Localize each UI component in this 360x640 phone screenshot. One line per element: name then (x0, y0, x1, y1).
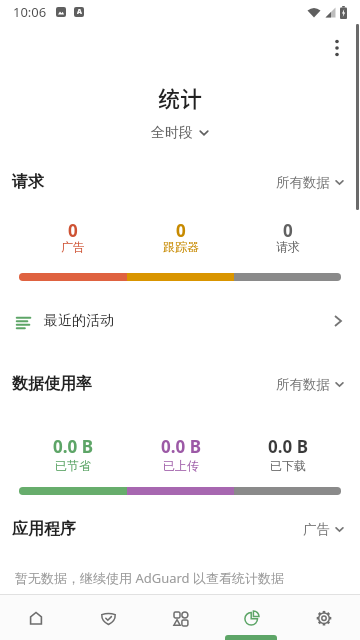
button[interactable]: 所有数据 (276, 376, 344, 393)
button[interactable]: 广告 (303, 521, 344, 538)
button[interactable] (0, 595, 72, 640)
staticText: 0 (283, 219, 293, 239)
staticText: 请求 (12, 172, 44, 192)
staticText: 已上传 (163, 458, 199, 473)
staticText: 最近的活动 (44, 312, 114, 330)
button[interactable] (72, 595, 144, 640)
staticText: 0.0 B (268, 435, 308, 455)
staticText: 统计 (158, 81, 203, 111)
button[interactable] (321, 32, 353, 64)
staticText: 广告 (61, 239, 85, 254)
staticText: 所有数据 (276, 174, 330, 191)
button[interactable] (216, 595, 288, 640)
button[interactable]: 最近的活动 (0, 297, 360, 345)
staticText: 全时段 (151, 124, 193, 142)
staticText: 10:06 (13, 3, 47, 21)
button[interactable] (144, 595, 216, 640)
staticText: 已下载 (270, 458, 306, 473)
staticText: 0 (68, 219, 78, 239)
button[interactable]: 所有数据 (276, 174, 344, 191)
staticText: 0.0 B (53, 435, 93, 455)
staticText: 跟踪器 (163, 239, 199, 254)
staticText: 应用程序 (12, 519, 76, 539)
button[interactable] (288, 595, 360, 640)
button[interactable]: 全时段 (151, 119, 209, 147)
staticText: 所有数据 (276, 376, 330, 393)
staticText: 广告 (303, 521, 330, 538)
staticText: 暂无数据，继续使用 AdGuard 以查看统计数据 (15, 569, 284, 585)
staticText: A (77, 7, 82, 17)
staticText: 请求 (276, 239, 300, 254)
staticText: 已节省 (55, 458, 91, 473)
staticText: 0.0 B (161, 435, 201, 455)
staticText: 0 (176, 219, 186, 239)
staticText: 数据使用率 (12, 374, 92, 394)
